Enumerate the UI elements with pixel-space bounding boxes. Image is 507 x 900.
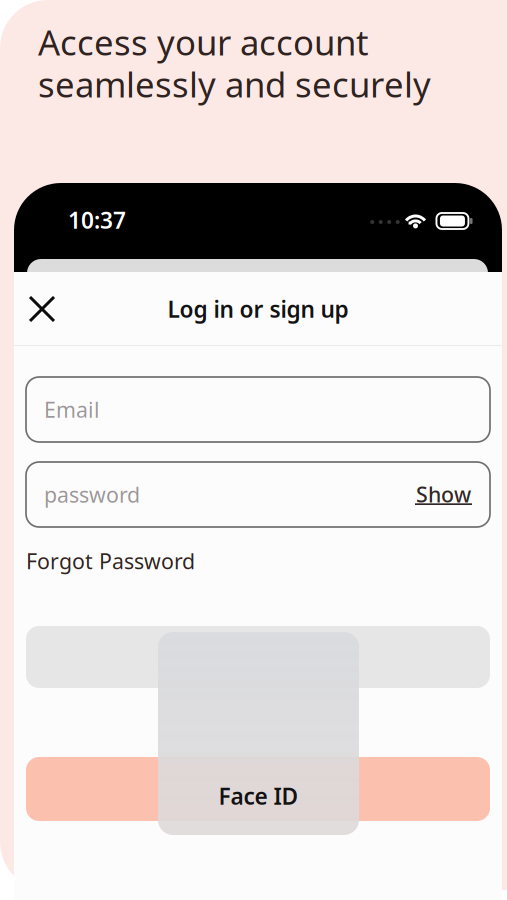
staticText: 10:37 [68, 205, 126, 235]
button[interactable] [26, 626, 490, 688]
staticText: Face ID [218, 781, 298, 811]
button[interactable]: Close [16, 283, 68, 335]
staticText: Log in or sign up [167, 294, 348, 324]
button[interactable]: Show [415, 482, 472, 507]
staticText: seamlessly and securely [38, 61, 431, 107]
button[interactable]: Email [26, 377, 490, 442]
staticText: password [44, 480, 140, 509]
staticText: Show [416, 480, 471, 508]
staticText: Email [44, 395, 100, 424]
staticText: Forgot Password [26, 547, 195, 575]
button[interactable] [26, 757, 490, 821]
staticText: Access your account [38, 19, 369, 65]
button[interactable]: Forgot Password [26, 547, 266, 575]
